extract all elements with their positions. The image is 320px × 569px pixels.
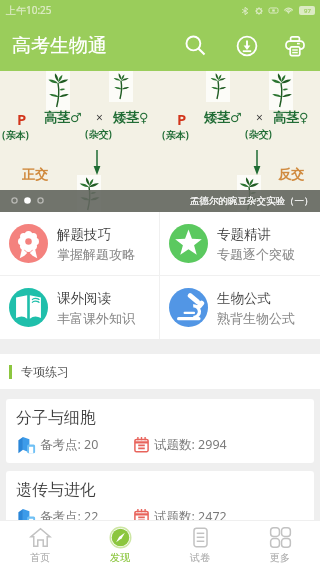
- button[interactable]: 遗传与进化: [6, 471, 314, 535]
- staticText: 矮茎♂: [204, 109, 242, 125]
- staticText: (杂交): [245, 127, 272, 141]
- staticText: 发现: [110, 551, 130, 564]
- button[interactable]: 课外阅读: [0, 276, 159, 339]
- staticText: 生物公式: [217, 290, 271, 307]
- staticText: 反交: [278, 166, 304, 182]
- staticText: 矮茎♀: [113, 109, 149, 125]
- staticText: 上午10:25: [6, 3, 52, 17]
- staticText: 试题数: 2472: [154, 508, 227, 525]
- button[interactable]: 解题技巧: [0, 212, 159, 275]
- staticText: 课外阅读: [57, 290, 111, 307]
- staticText: P: [17, 109, 27, 129]
- staticText: ×: [256, 109, 263, 125]
- staticText: 丰富课外知识: [57, 310, 135, 326]
- staticText: 专题精讲: [217, 226, 271, 243]
- staticText: 高茎♀: [273, 109, 309, 125]
- staticText: ×: [96, 109, 103, 125]
- staticText: P: [177, 109, 187, 129]
- button[interactable]: 分子与细胞: [6, 399, 314, 463]
- button[interactable]: 更多: [240, 521, 320, 569]
- staticText: 孟德尔的豌豆杂交实验（一）: [190, 195, 314, 207]
- button[interactable]: Download: [219, 20, 275, 71]
- staticText: 解题技巧: [57, 226, 111, 243]
- button[interactable]: P: [0, 71, 320, 212]
- staticText: (杂交): [85, 127, 112, 141]
- staticText: 更多: [270, 551, 290, 564]
- button[interactable]: 试卷: [160, 521, 240, 569]
- staticText: 97: [304, 7, 311, 15]
- staticText: 专题逐个突破: [217, 246, 295, 262]
- staticText: 熟背生物公式: [217, 310, 295, 326]
- staticText: 分子与细胞: [16, 408, 96, 428]
- staticText: 高考生物通: [12, 34, 107, 58]
- staticText: 试题数: 2994: [154, 436, 227, 453]
- button[interactable]: Search: [172, 20, 219, 71]
- button[interactable]: 发现: [80, 521, 160, 569]
- button[interactable]: 首页: [0, 521, 80, 569]
- staticText: 正交: [22, 166, 48, 182]
- button[interactable]: 生物公式: [160, 276, 320, 339]
- button[interactable]: Print: [275, 20, 315, 71]
- staticText: 试卷: [190, 551, 210, 564]
- staticText: 遗传与进化: [16, 480, 96, 500]
- staticText: (亲本): [2, 128, 29, 142]
- button[interactable]: 专题精讲: [160, 212, 320, 275]
- staticText: (亲本): [162, 128, 189, 142]
- staticText: 专项练习: [21, 364, 69, 379]
- staticText: 首页: [30, 551, 50, 564]
- staticText: 掌握解题攻略: [57, 246, 135, 262]
- staticText: 备考点: 20: [40, 436, 99, 453]
- staticText: 高茎♂: [44, 109, 82, 125]
- staticText: 备考点: 22: [40, 508, 99, 525]
